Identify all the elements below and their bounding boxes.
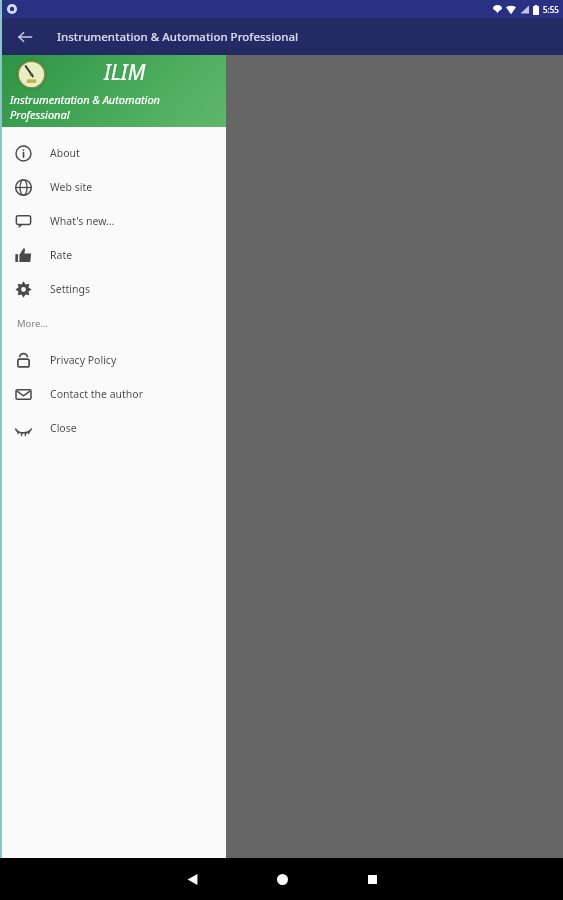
staticText: Instrumentation & Automation Professiona… bbox=[10, 92, 160, 122]
button[interactable]: Back bbox=[168, 858, 216, 900]
staticText: Settings bbox=[50, 282, 90, 296]
staticText: Web site bbox=[50, 180, 93, 194]
button[interactable]: Web site bbox=[0, 170, 226, 204]
staticText: 5:55 bbox=[543, 4, 559, 15]
button[interactable]: Back bbox=[12, 24, 38, 50]
button[interactable]: About bbox=[0, 136, 226, 170]
button[interactable]: Contact the author bbox=[0, 377, 226, 411]
button[interactable]: What's new... bbox=[0, 204, 226, 238]
staticText: Instrumentation & Automation Professiona… bbox=[57, 29, 299, 45]
button[interactable]: Settings bbox=[0, 272, 226, 306]
button[interactable]: Close bbox=[0, 411, 226, 445]
staticText: Close bbox=[50, 421, 77, 435]
staticText: Privacy Policy bbox=[50, 353, 117, 367]
button[interactable]: Recents bbox=[348, 858, 396, 900]
staticText: Rate bbox=[50, 248, 73, 262]
button[interactable]: Home bbox=[258, 858, 306, 900]
staticText: About bbox=[50, 146, 80, 160]
staticText: More... bbox=[17, 317, 49, 330]
staticText: What's new... bbox=[50, 214, 115, 228]
staticText: Contact the author bbox=[50, 387, 143, 401]
button[interactable]: Privacy Policy bbox=[0, 343, 226, 377]
staticText: ILIM bbox=[104, 58, 146, 87]
button[interactable]: Rate bbox=[0, 238, 226, 272]
